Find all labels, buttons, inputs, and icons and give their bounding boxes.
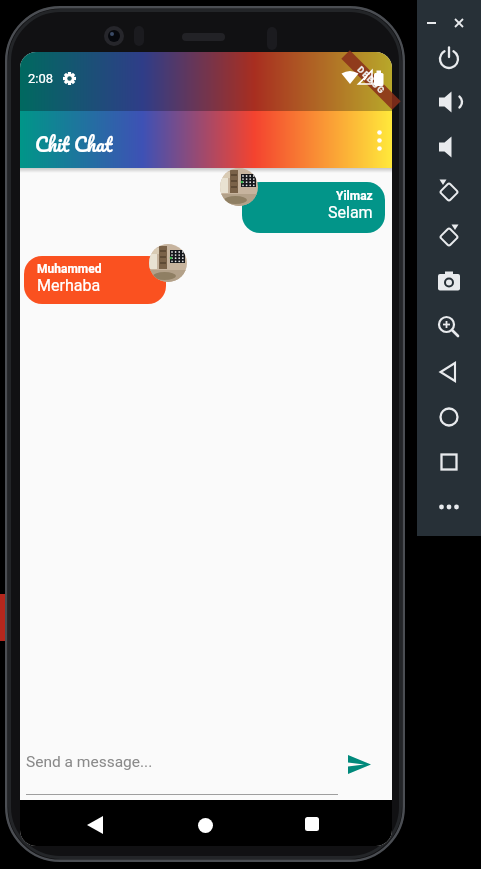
button[interactable]	[433, 221, 465, 253]
button[interactable]	[433, 266, 465, 298]
button[interactable]	[192, 812, 218, 838]
staticText: Yilmaz	[336, 189, 373, 203]
button[interactable]	[433, 401, 465, 433]
button[interactable]	[433, 131, 465, 163]
staticText: Send a message...	[26, 753, 153, 771]
button[interactable]	[433, 491, 465, 523]
staticText: Chit Chat	[35, 128, 113, 160]
button[interactable]	[149, 244, 187, 282]
button[interactable]	[83, 812, 107, 838]
button[interactable]	[433, 311, 465, 343]
button[interactable]	[342, 749, 376, 779]
button[interactable]	[433, 446, 465, 478]
staticText: DEBUG	[355, 64, 387, 97]
button[interactable]	[433, 176, 465, 208]
button[interactable]	[433, 42, 465, 74]
staticText: Selam	[328, 203, 373, 222]
button[interactable]	[433, 86, 465, 118]
staticText: 2:08	[28, 71, 54, 86]
staticText: Merhaba	[37, 276, 101, 295]
button[interactable]	[299, 811, 325, 837]
button[interactable]	[220, 168, 258, 206]
button[interactable]	[368, 120, 390, 160]
button[interactable]: Yilmaz	[242, 182, 385, 233]
button[interactable]: Muhammed	[24, 256, 166, 304]
button[interactable]: Send a message...	[20, 738, 392, 800]
button[interactable]	[433, 356, 465, 388]
staticText: Muhammed	[37, 262, 102, 276]
